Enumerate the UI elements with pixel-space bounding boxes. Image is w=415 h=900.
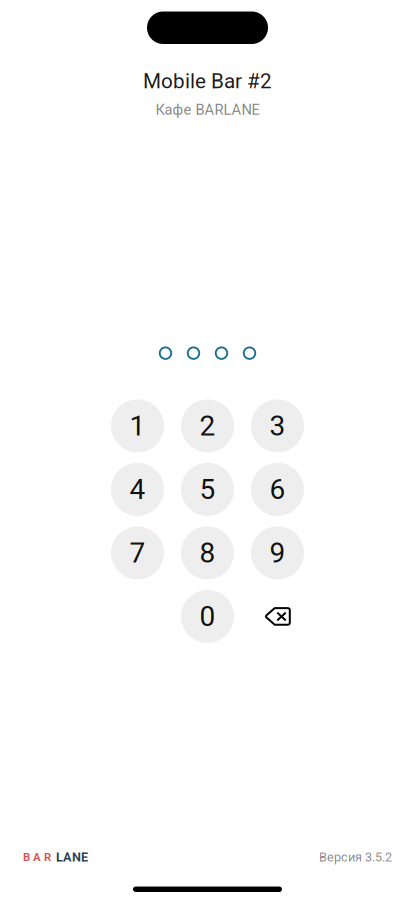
staticText: 9 — [269, 536, 285, 569]
staticText: Кафе BARLANE — [155, 101, 259, 118]
staticText: 1 — [129, 409, 145, 442]
button[interactable]: 6 — [251, 463, 304, 516]
button[interactable]: 0 — [181, 590, 234, 643]
staticText: B A R — [23, 850, 51, 864]
staticText: 6 — [269, 473, 285, 506]
staticText: 0 — [199, 600, 215, 633]
staticText: Версия 3.5.2 — [319, 850, 392, 864]
button[interactable]: 4 — [111, 463, 164, 516]
button[interactable]: 2 — [181, 399, 234, 452]
staticText: 8 — [199, 536, 215, 569]
button[interactable]: 8 — [181, 526, 234, 579]
staticText: 4 — [129, 473, 145, 506]
button[interactable]: 1 — [111, 399, 164, 452]
staticText: 7 — [129, 536, 145, 569]
staticText: 2 — [199, 409, 215, 442]
button[interactable]: 9 — [251, 526, 304, 579]
staticText: 5 — [199, 473, 215, 506]
button[interactable]: Delete — [251, 590, 304, 643]
button[interactable]: 5 — [181, 463, 234, 516]
staticText: Mobile Bar #2 — [143, 69, 272, 93]
button[interactable]: 3 — [251, 399, 304, 452]
button[interactable]: 7 — [111, 526, 164, 579]
staticText: LANE — [56, 850, 88, 864]
staticText: 3 — [269, 409, 285, 442]
